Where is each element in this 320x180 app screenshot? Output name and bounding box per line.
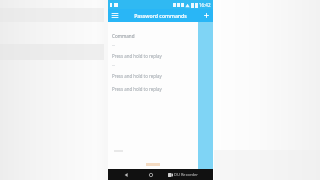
button[interactable]: Press and hold to replay	[108, 49, 198, 62]
staticText: Command	[112, 33, 135, 39]
button[interactable]: More options	[200, 9, 213, 22]
button[interactable]: Back	[120, 169, 131, 180]
button[interactable]: Press and hold to replay	[108, 69, 198, 82]
staticText: 16:42	[199, 2, 211, 8]
button[interactable]: Home	[145, 169, 156, 180]
button[interactable]: Open navigation drawer	[108, 9, 121, 22]
staticText: DU Recorder	[174, 172, 198, 177]
staticText: Press and hold to replay	[112, 53, 162, 59]
button[interactable]: Command	[108, 29, 198, 42]
button[interactable]: Press and hold to replay	[108, 82, 198, 95]
staticText: Press and hold to replay	[112, 86, 162, 92]
staticText: Press and hold to replay	[112, 73, 162, 79]
staticText: Password commands	[134, 12, 187, 19]
